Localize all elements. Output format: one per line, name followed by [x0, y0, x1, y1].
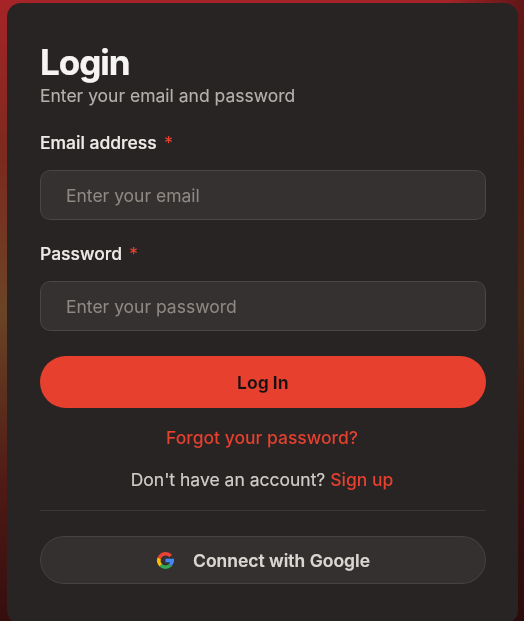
staticText: Connect with Google — [193, 550, 370, 571]
staticText: Enter your email and password — [40, 85, 296, 106]
staticText: * — [129, 243, 139, 264]
staticText: Email address — [40, 132, 157, 153]
staticText: * — [164, 132, 174, 153]
staticText: Enter your password — [66, 296, 237, 317]
staticText: Log In — [237, 372, 289, 393]
staticText: Forgot your password? — [0, 427, 524, 448]
button[interactable]: Don't have an account? Sign up — [0, 469, 524, 490]
staticText: Login — [40, 41, 130, 83]
staticText: Enter your email — [66, 185, 200, 206]
button[interactable]: Connect with Google — [40, 536, 486, 584]
button[interactable]: Log In — [40, 356, 486, 408]
button[interactable]: Forgot your password? — [0, 427, 524, 448]
button[interactable]: Enter your password — [40, 281, 486, 331]
staticText: Password — [40, 243, 122, 264]
button[interactable]: Enter your email — [40, 170, 486, 220]
